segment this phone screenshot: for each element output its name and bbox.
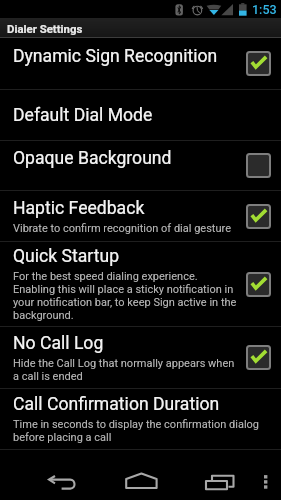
staticText: Haptic Feedback (13, 198, 145, 219)
staticText: Quick Startup (13, 246, 120, 267)
button[interactable]: Toggle (246, 345, 271, 370)
staticText: Default Dial Mode (13, 105, 153, 126)
staticText: Call Confirmation Duration (13, 394, 220, 415)
staticText: No Call Log (13, 333, 104, 354)
staticText: Time in seconds to display the confirmat… (13, 418, 275, 444)
staticText: Dialer Settings (7, 22, 83, 35)
staticText: For the best speed dialing experience. E… (13, 270, 240, 322)
button[interactable]: Toggle (246, 153, 271, 178)
staticText: Opaque Background (13, 148, 172, 169)
staticText: Vibrate to confirm recognition of dial g… (13, 222, 231, 235)
staticText: 1:53 (252, 2, 277, 17)
button[interactable]: Toggle (246, 272, 271, 297)
button[interactable]: Default Dial Mode (0, 90, 281, 140)
button[interactable]: Quick Startup (0, 242, 281, 326)
button[interactable]: Recent apps (185, 462, 247, 500)
button[interactable]: Toggle (246, 51, 271, 76)
button[interactable]: Haptic Feedback (0, 191, 281, 241)
button[interactable]: Dynamic Sign Recognition (0, 38, 281, 89)
button[interactable]: Opaque Background (0, 141, 281, 190)
button[interactable]: Home (110, 462, 185, 500)
staticText: Dynamic Sign Recognition (13, 46, 218, 67)
button[interactable]: Back (0, 462, 110, 500)
button[interactable]: Call Confirmation Duration (0, 389, 281, 449)
button[interactable]: More options (247, 462, 281, 500)
button[interactable]: Toggle (246, 204, 271, 229)
staticText: Hide the Call Log that normally appears … (13, 357, 240, 383)
button[interactable]: No Call Log (0, 327, 281, 388)
